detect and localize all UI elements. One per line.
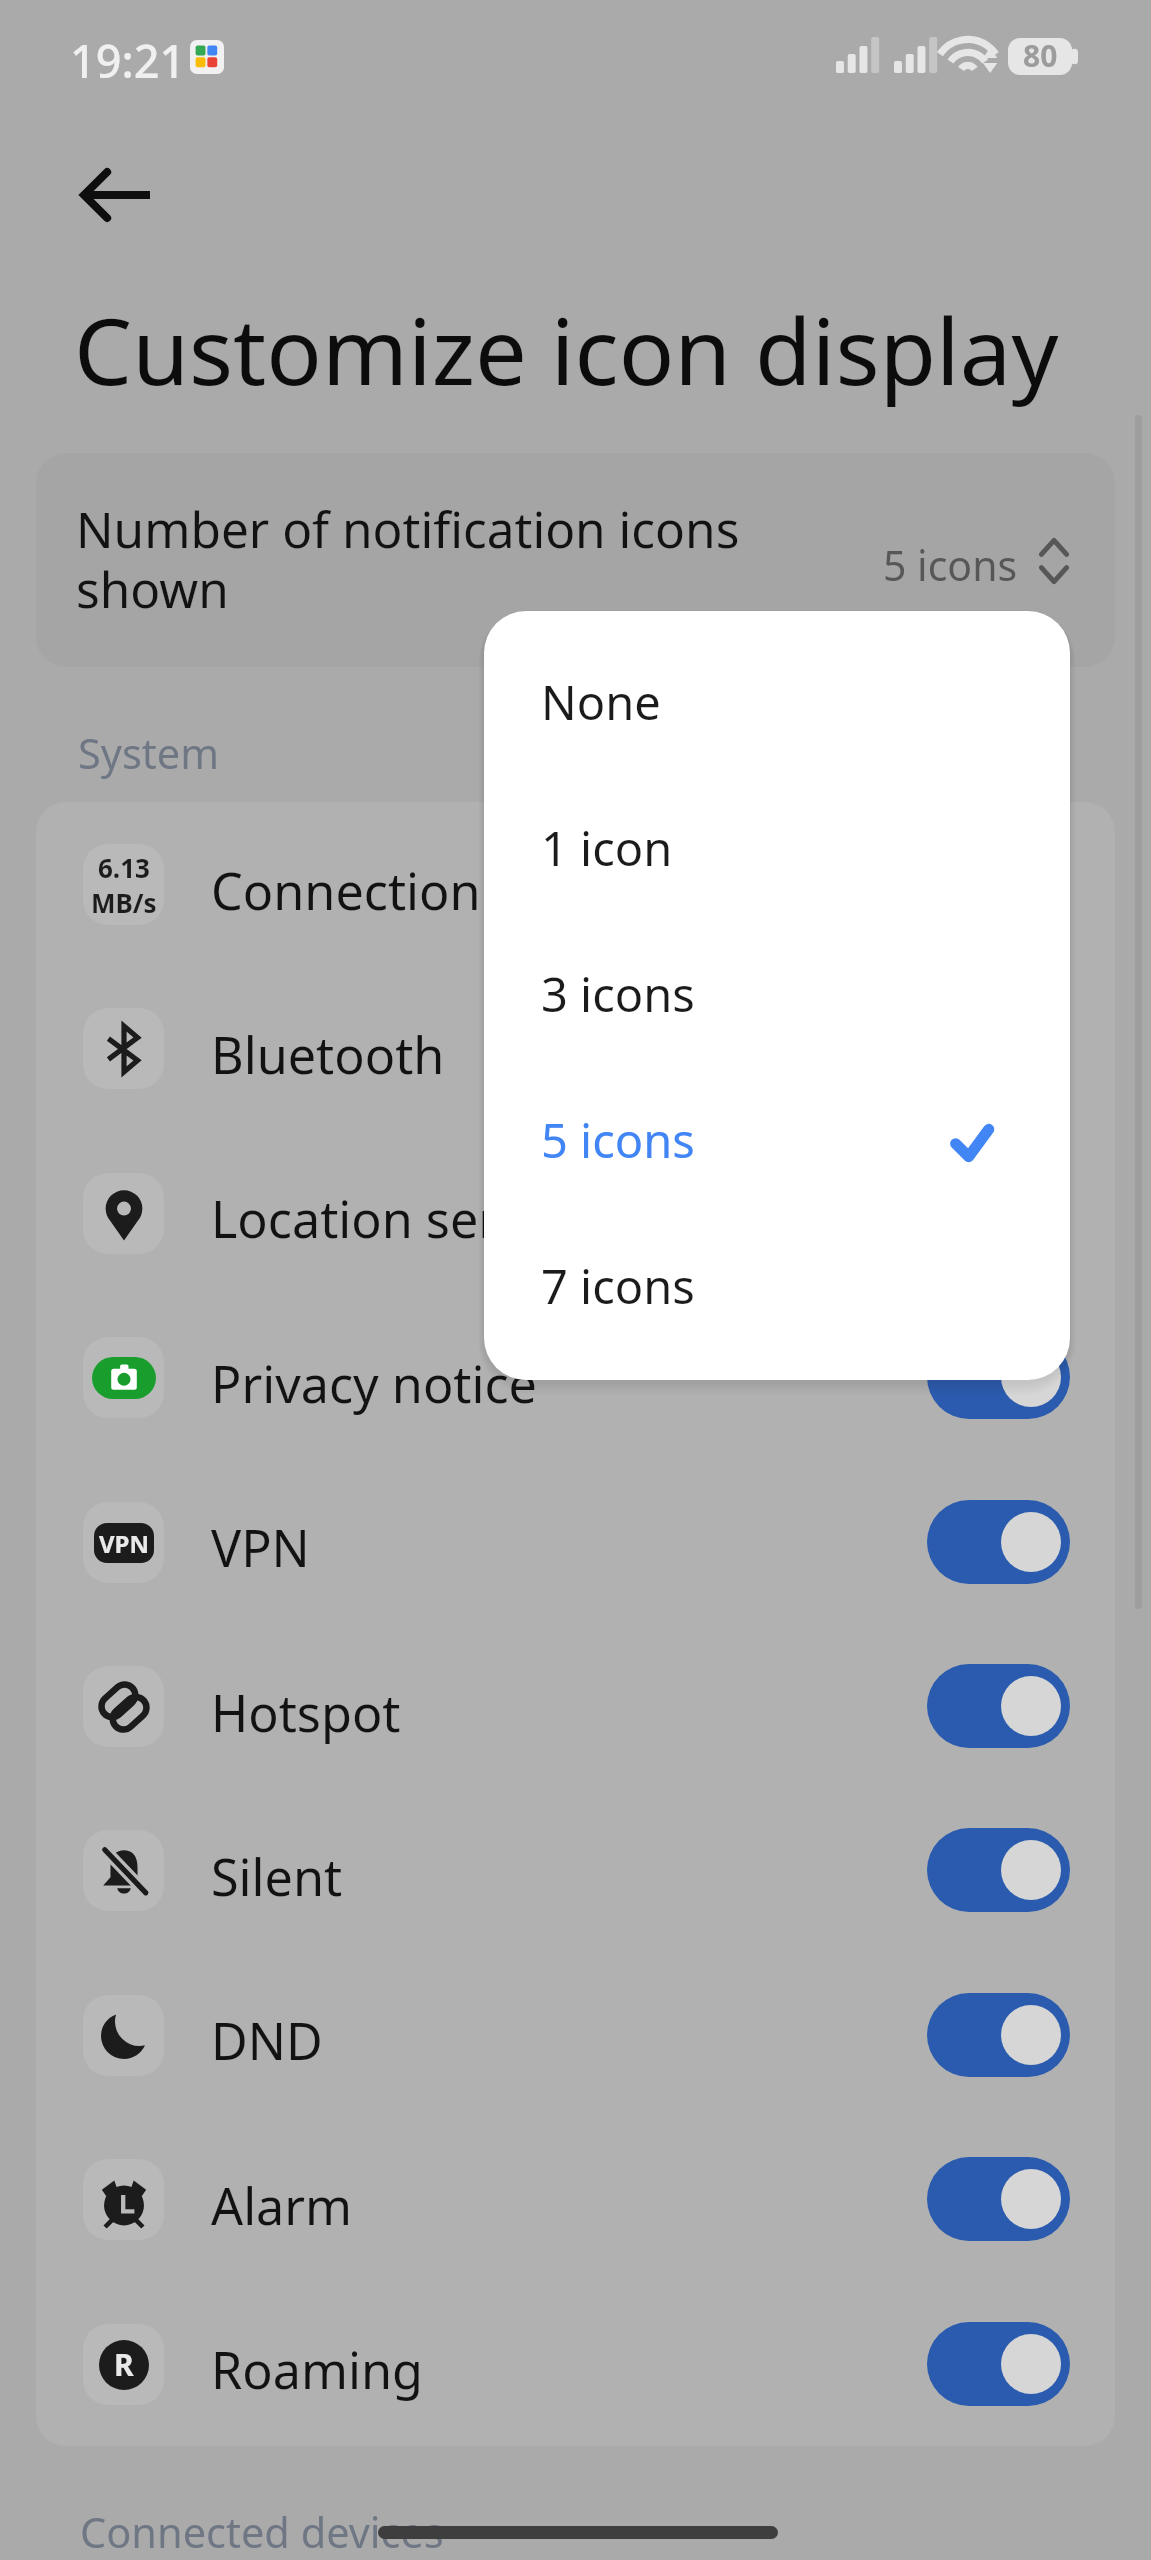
button[interactable]: Location services <box>36 1131 1115 1295</box>
button[interactable]: Alarm <box>36 2117 1115 2281</box>
staticText: Alarm <box>211 2171 353 2240</box>
button[interactable]: Show Roaming icon, on <box>927 2322 1070 2406</box>
staticText: R <box>114 2344 134 2385</box>
button[interactable]: Connection speed <box>36 802 1115 966</box>
staticText: Customize icon display <box>74 287 1059 412</box>
button[interactable]: 3 icons <box>484 901 1070 1047</box>
staticText: None <box>541 670 661 734</box>
staticText: MB/s <box>91 885 157 920</box>
button[interactable]: Bluetooth <box>36 966 1115 1130</box>
staticText: VPN <box>211 1513 310 1582</box>
staticText: Connection speed <box>211 856 637 925</box>
button[interactable]: Show Silent icon, on <box>927 1828 1070 1912</box>
staticText: shown <box>76 555 229 622</box>
button[interactable]: VPN <box>36 1460 1115 1624</box>
staticText: 80 <box>1023 35 1058 76</box>
button[interactable]: Show DND icon, on <box>927 1993 1070 2077</box>
button[interactable]: DND <box>36 1953 1115 2117</box>
button[interactable]: Hotspot <box>36 1624 1115 1788</box>
button[interactable]: 1 icon <box>484 755 1070 901</box>
staticText: 19:21 <box>70 30 186 91</box>
button[interactable]: Show VPN icon, on <box>927 1500 1070 1584</box>
button[interactable]: Show Alarm icon, on <box>927 2157 1070 2241</box>
staticText: Location services <box>211 1184 615 1253</box>
button[interactable]: Back <box>46 125 186 265</box>
button[interactable]: 7 icons <box>484 1193 1070 1339</box>
staticText: Connected devices <box>80 2504 444 2560</box>
button[interactable]: 5 icons, selected <box>484 1047 1070 1193</box>
staticText: Silent <box>211 1842 343 1911</box>
button[interactable]: None <box>484 609 1070 755</box>
staticText: System <box>78 725 220 782</box>
staticText: 3 icons <box>541 962 695 1026</box>
staticText: 6.13 <box>98 850 150 885</box>
staticText: Number of notification icons <box>76 495 740 562</box>
button[interactable]: Roaming <box>36 2282 1115 2446</box>
staticText: 1 icon <box>541 816 673 880</box>
button[interactable]: Privacy notice <box>36 1295 1115 1459</box>
staticText: Bluetooth <box>211 1020 445 1089</box>
staticText: 7 icons <box>541 1254 695 1318</box>
staticText: DND <box>211 2006 323 2075</box>
button[interactable]: Silent <box>36 1788 1115 1952</box>
staticText: Roaming <box>211 2335 423 2404</box>
staticText: 5 icons <box>541 1108 695 1172</box>
staticText: VPN <box>99 1527 150 1560</box>
button[interactable]: Number of notification icons shown, 5 ic… <box>36 453 1115 667</box>
button[interactable]: Show Privacy notice icon, on <box>927 1335 1070 1419</box>
staticText: Privacy notice <box>211 1349 537 1418</box>
button[interactable]: Show Hotspot icon, on <box>927 1664 1070 1748</box>
staticText: 5 icons <box>883 537 1018 593</box>
staticText: Hotspot <box>211 1678 401 1747</box>
